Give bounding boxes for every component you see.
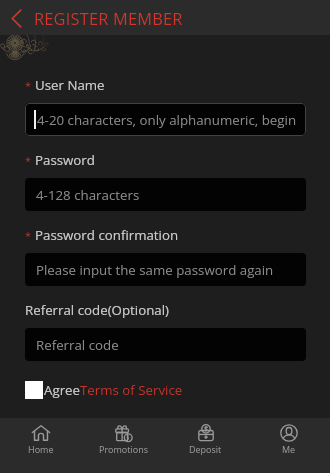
button[interactable]: Back	[0, 2, 32, 34]
staticText: *	[25, 228, 31, 243]
staticText: Deposit	[189, 443, 222, 455]
staticText: Password confirmation	[35, 226, 179, 244]
button[interactable]: Promotions	[82, 418, 164, 473]
button[interactable]: Me	[247, 418, 330, 473]
staticText: Referral code	[36, 336, 119, 354]
staticText: Terms of Service	[80, 381, 183, 399]
button[interactable]: Deposit	[164, 418, 247, 473]
staticText: Referral code(Optional)	[25, 301, 169, 319]
staticText: Promotions	[99, 443, 148, 455]
staticText: 4-128 characters	[36, 186, 140, 204]
staticText: Please input the same password again	[36, 261, 274, 279]
staticText: REGISTER MEMBER	[34, 7, 183, 29]
staticText: User Name	[35, 76, 105, 94]
button[interactable]: 4-128 characters	[25, 178, 306, 211]
button[interactable]: Please input the same password again	[25, 253, 306, 286]
button[interactable]: 4-20 characters, only alphanumeric, begi…	[25, 103, 306, 136]
staticText: Agree	[44, 381, 80, 399]
button[interactable]: Referral code	[25, 328, 306, 361]
button[interactable]: Agree	[25, 381, 183, 399]
staticText: *	[25, 153, 31, 168]
button[interactable]: Home	[0, 418, 82, 473]
staticText: Password	[35, 151, 95, 169]
staticText: Me	[282, 443, 296, 455]
staticText: 4-20 characters, only alphanumeric, begi…	[37, 111, 297, 129]
staticText: Home	[28, 443, 54, 455]
staticText: *	[25, 78, 31, 93]
